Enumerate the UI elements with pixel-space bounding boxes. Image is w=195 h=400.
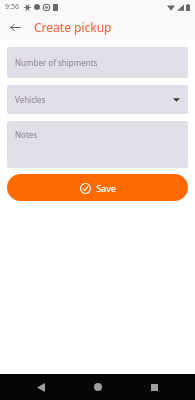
button[interactable]: Vehicles	[7, 85, 188, 114]
button[interactable]: Notes	[7, 121, 188, 168]
button[interactable]: Number of shipments	[7, 47, 188, 78]
staticText: Number of shipments	[15, 57, 98, 68]
staticText: Vehicles	[15, 94, 46, 105]
button[interactable]: Recent apps	[145, 378, 163, 396]
staticText: 9:56	[5, 2, 19, 12]
button[interactable]: Home	[89, 378, 107, 396]
button[interactable]: Back	[32, 378, 50, 396]
button[interactable]: Save	[7, 174, 188, 201]
staticText: Save	[96, 182, 116, 194]
button[interactable]: Back	[5, 17, 25, 37]
staticText: Notes	[15, 129, 38, 140]
staticText: Create pickup	[34, 19, 112, 35]
